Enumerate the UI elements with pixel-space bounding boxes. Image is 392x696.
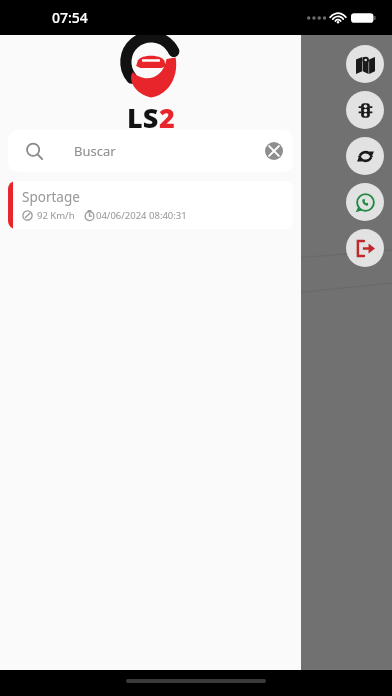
button[interactable]: WhatsApp bbox=[346, 183, 384, 221]
other: Search bbox=[26, 143, 43, 160]
button[interactable]: Traffic bbox=[346, 91, 384, 129]
staticText: 04/06/2024 08:40:31 bbox=[96, 209, 187, 222]
staticText: Buscar bbox=[74, 142, 116, 160]
staticText: 07:54 bbox=[52, 8, 88, 27]
button[interactable]: Sportage bbox=[8, 181, 293, 229]
button[interactable]: Log out bbox=[346, 229, 384, 267]
staticText: Sportage bbox=[22, 188, 80, 206]
button[interactable]: Search bbox=[8, 130, 293, 172]
button[interactable]: Map bbox=[346, 45, 384, 83]
staticText: 2 bbox=[159, 99, 175, 130]
staticText: 92 Km/h bbox=[37, 209, 75, 222]
staticText: LS bbox=[127, 99, 159, 130]
button[interactable]: Clear search bbox=[265, 142, 283, 160]
button[interactable]: Refresh bbox=[346, 137, 384, 175]
